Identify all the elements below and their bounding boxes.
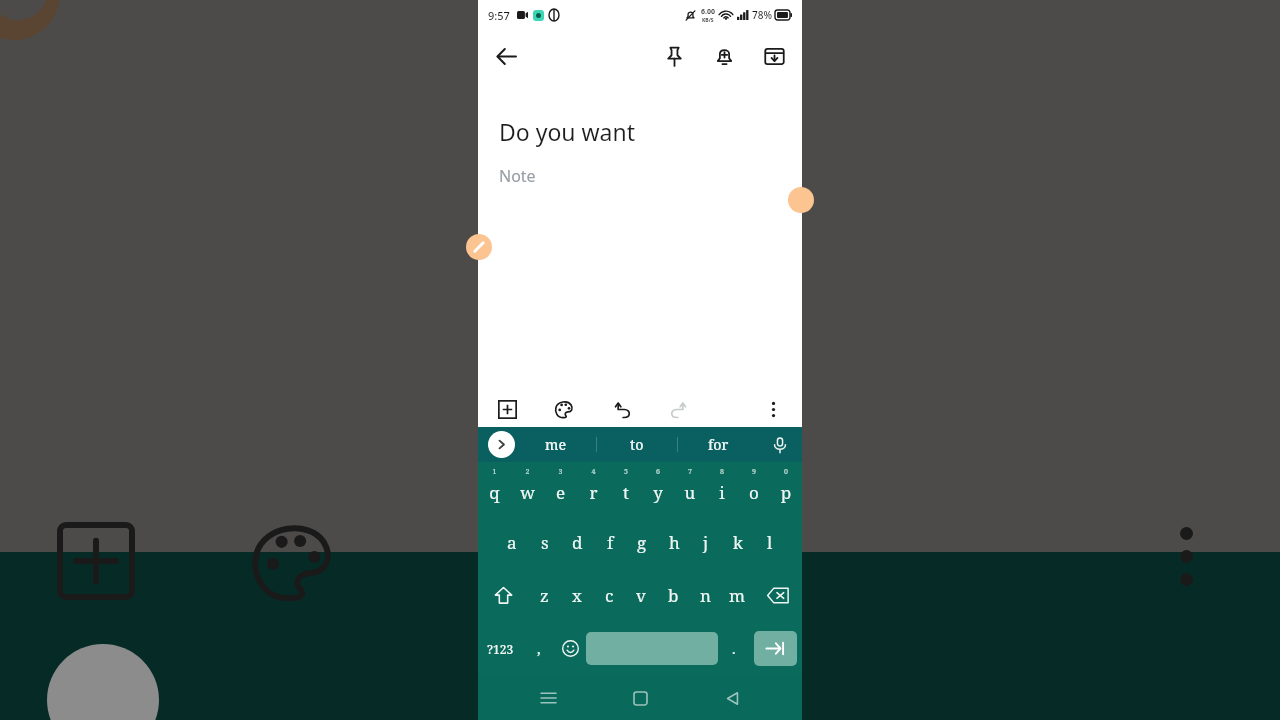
button[interactable]: Backspace: [753, 569, 802, 622]
button[interactable]: Emoji: [555, 622, 586, 675]
button[interactable]: h: [658, 516, 690, 569]
staticText: u: [674, 481, 706, 504]
staticText: r: [577, 481, 610, 504]
button[interactable]: n: [689, 569, 721, 622]
button[interactable]: Reminder: [708, 40, 740, 72]
button[interactable]: for: [678, 427, 758, 462]
button[interactable]: Note: [499, 165, 781, 187]
button[interactable]: 0: [770, 462, 802, 516]
staticText: n: [700, 584, 711, 607]
staticText: KB/S: [702, 17, 714, 24]
staticText: 9:57: [488, 8, 510, 23]
button[interactable]: Voice input: [758, 427, 802, 462]
staticText: i: [706, 481, 738, 504]
button[interactable]: 3: [544, 462, 577, 516]
button[interactable]: Pin: [658, 40, 690, 72]
staticText: y: [642, 481, 674, 504]
staticText: 0: [770, 467, 802, 477]
staticText: 78%: [752, 8, 772, 22]
staticText: 1: [478, 467, 511, 477]
button[interactable]: Back: [490, 40, 522, 72]
button[interactable]: Colour: [548, 394, 578, 424]
staticText: a: [507, 531, 517, 554]
staticText: 7: [674, 467, 706, 477]
button[interactable]: Redo: [662, 394, 692, 424]
button[interactable]: s: [528, 516, 561, 569]
staticText: for: [708, 435, 729, 454]
staticText: 5: [610, 467, 642, 477]
button[interactable]: f: [594, 516, 626, 569]
staticText: h: [669, 531, 680, 554]
button[interactable]: 6: [642, 462, 674, 516]
staticText: 6.00: [701, 7, 715, 17]
staticText: Note: [499, 165, 536, 187]
button[interactable]: b: [657, 569, 689, 622]
button[interactable]: Enter: [754, 631, 797, 666]
button[interactable]: 9: [738, 462, 770, 516]
button[interactable]: m: [721, 569, 753, 622]
staticText: 9: [738, 467, 770, 477]
staticText: s: [541, 531, 549, 554]
button[interactable]: a: [495, 516, 528, 569]
button[interactable]: 2: [511, 462, 544, 516]
button[interactable]: Do you want: [499, 116, 781, 147]
staticText: b: [668, 584, 679, 607]
button[interactable]: Undo: [608, 394, 638, 424]
button[interactable]: v: [625, 569, 657, 622]
staticText: c: [605, 584, 614, 607]
button[interactable]: Space: [586, 632, 718, 665]
staticText: 4: [577, 467, 610, 477]
button[interactable]: l: [754, 516, 786, 569]
staticText: 6: [642, 467, 674, 477]
button[interactable]: ?123: [478, 622, 523, 675]
staticText: f: [607, 531, 614, 554]
staticText: q: [478, 481, 511, 504]
button[interactable]: k: [722, 516, 754, 569]
staticText: k: [733, 531, 743, 554]
button[interactable]: z: [528, 569, 561, 622]
button[interactable]: More options: [758, 394, 788, 424]
button[interactable]: 8: [706, 462, 738, 516]
staticText: to: [630, 435, 644, 454]
staticText: l: [767, 531, 773, 554]
button[interactable]: ,: [523, 622, 555, 675]
staticText: .: [732, 639, 736, 658]
button[interactable]: Add: [492, 394, 522, 424]
staticText: Do you want: [499, 116, 636, 147]
button[interactable]: 1: [478, 462, 511, 516]
button[interactable]: to: [597, 427, 677, 462]
staticText: 8: [706, 467, 738, 477]
button[interactable]: d: [561, 516, 594, 569]
staticText: g: [637, 531, 647, 554]
button[interactable]: .: [718, 622, 749, 675]
staticText: o: [738, 481, 770, 504]
button[interactable]: 7: [674, 462, 706, 516]
staticText: p: [770, 481, 802, 504]
button[interactable]: j: [690, 516, 722, 569]
staticText: v: [636, 584, 646, 607]
staticText: ?123: [487, 641, 514, 657]
button[interactable]: me: [515, 427, 596, 462]
button[interactable]: 4: [577, 462, 610, 516]
staticText: w: [511, 481, 544, 504]
button[interactable]: Home: [618, 676, 662, 720]
staticText: m: [729, 584, 746, 607]
staticText: e: [544, 481, 577, 504]
staticText: d: [572, 531, 583, 554]
staticText: me: [545, 435, 567, 454]
button[interactable]: Expand suggestions: [488, 431, 515, 458]
button[interactable]: x: [561, 569, 593, 622]
button[interactable]: g: [626, 516, 658, 569]
staticText: ,: [537, 639, 541, 658]
staticText: 3: [544, 467, 577, 477]
button[interactable]: Recents: [526, 676, 570, 720]
staticText: j: [703, 531, 709, 554]
button[interactable]: Archive: [758, 40, 790, 72]
staticText: x: [572, 584, 582, 607]
button[interactable]: Shift: [478, 569, 528, 622]
button[interactable]: Back: [710, 676, 754, 720]
staticText: t: [610, 481, 642, 504]
button[interactable]: c: [593, 569, 625, 622]
button[interactable]: 5: [610, 462, 642, 516]
staticText: z: [540, 584, 549, 607]
